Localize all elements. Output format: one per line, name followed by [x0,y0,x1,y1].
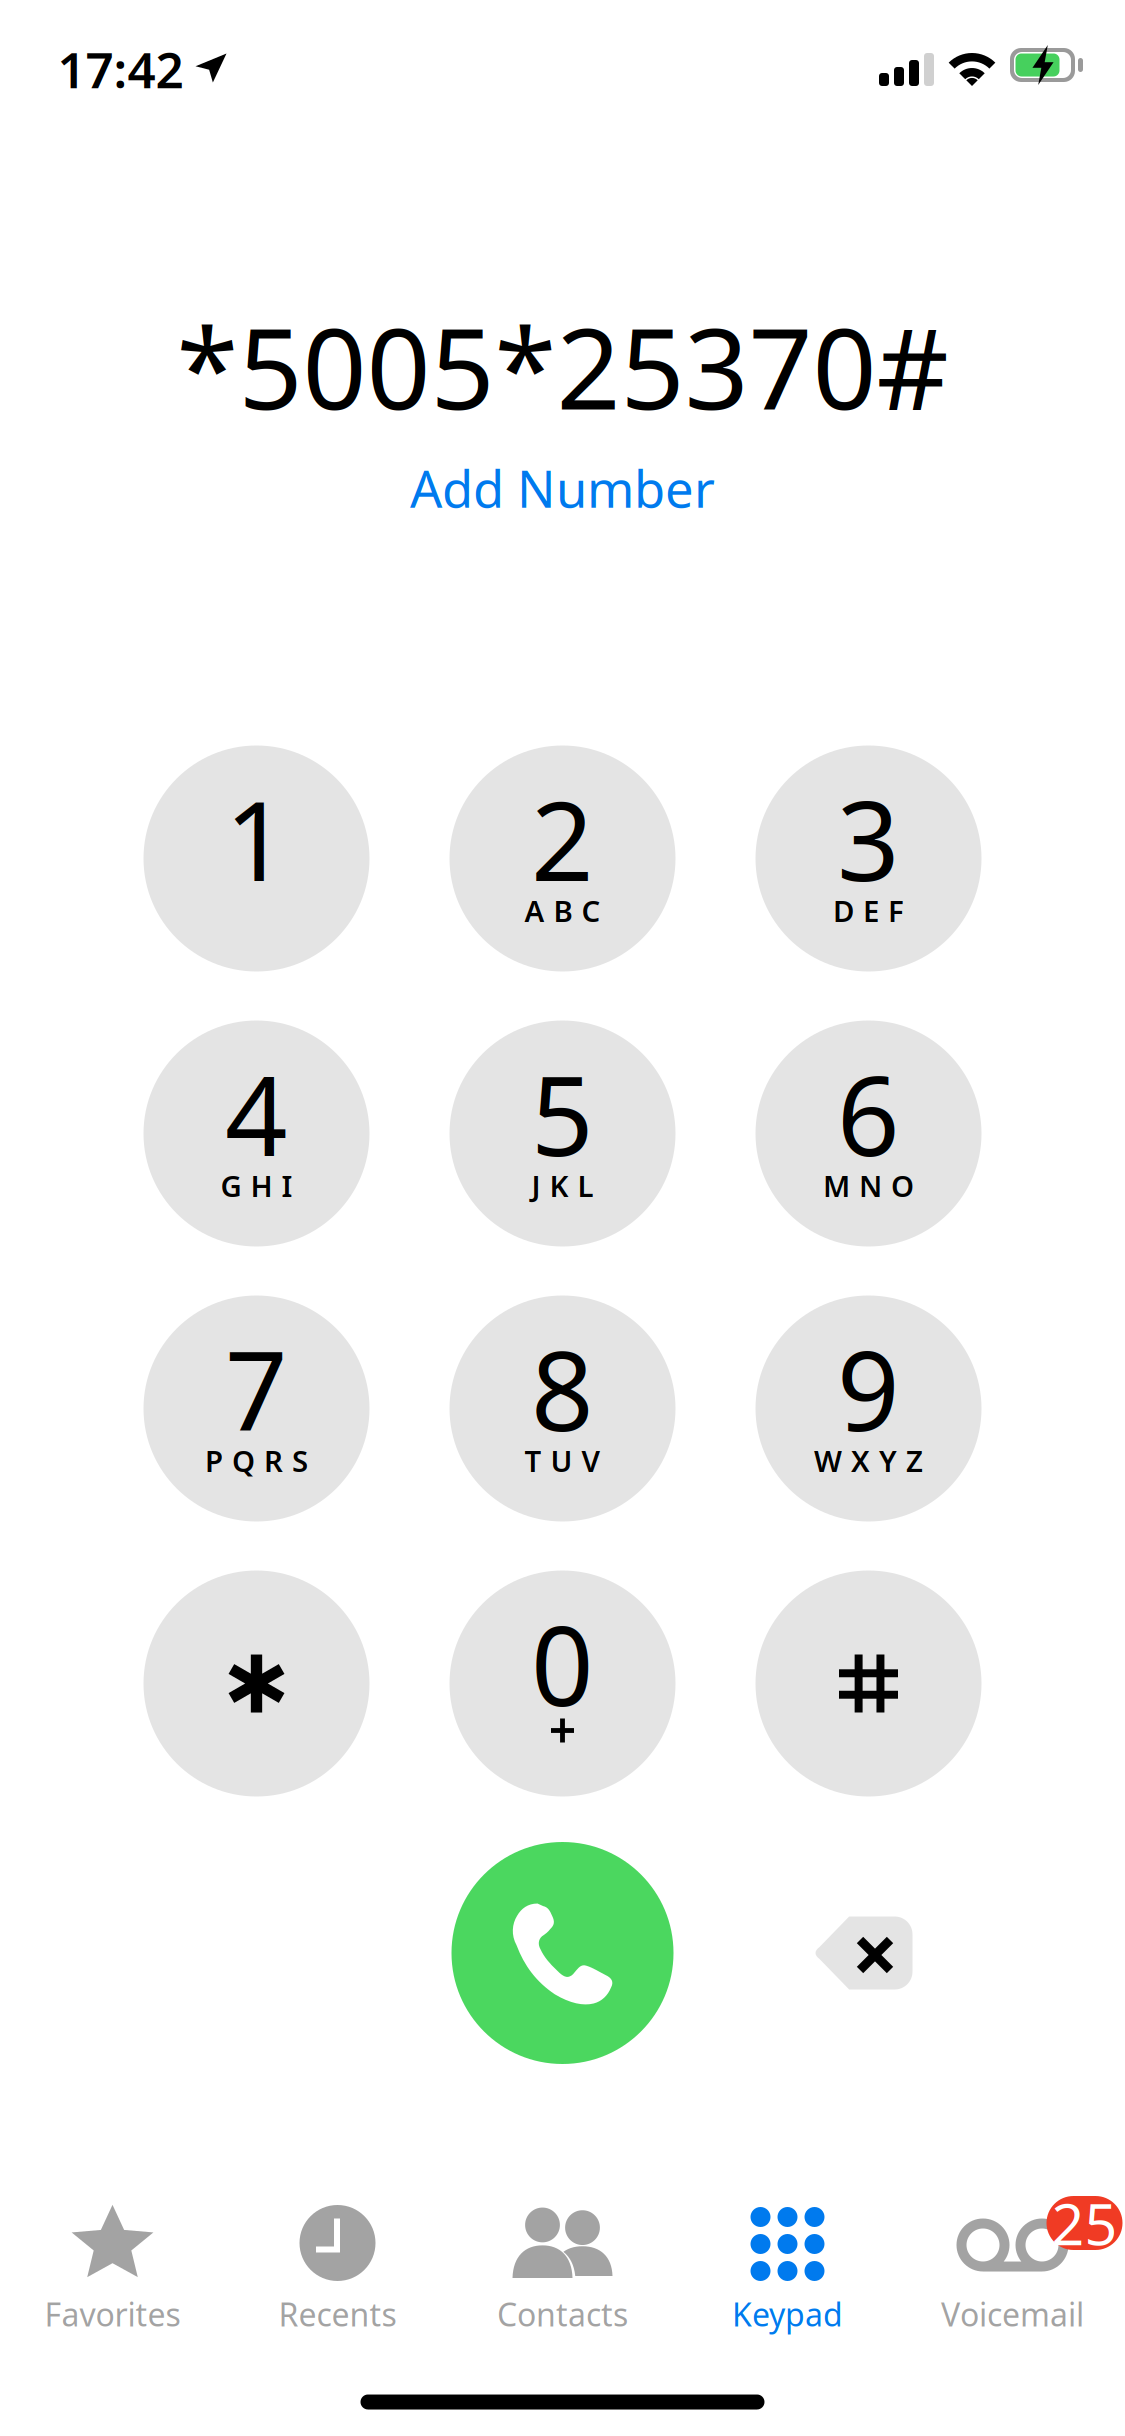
staticText: 17:42 [57,36,183,102]
button[interactable]: 25 [900,2180,1125,2336]
staticText: 5 [531,1041,594,1186]
button[interactable]: Delete [787,1888,939,2018]
button[interactable]: 1 [143,745,369,971]
button[interactable]: Favorites [0,2180,225,2336]
staticText: ABC [524,891,600,930]
button[interactable] [755,1570,981,1796]
button[interactable]: 3 [755,745,981,971]
button[interactable]: 0 [449,1570,675,1796]
button[interactable]: Call [451,1842,673,2064]
staticText: 8 [531,1316,594,1461]
button[interactable]: Keypad [675,2180,900,2336]
button[interactable]: 6 [755,1020,981,1246]
staticText: *5005*25370# [176,292,948,440]
button[interactable]: 7 [143,1295,369,1521]
button[interactable]: 8 [449,1295,675,1521]
staticText: 0 [531,1591,594,1736]
staticText: 7 [225,1316,288,1461]
staticText: WXYZ [814,1441,923,1480]
button[interactable]: 5 [449,1020,675,1246]
staticText: TUV [524,1441,600,1480]
staticText: Add Number [410,454,715,522]
button[interactable]: Contacts [450,2180,675,2336]
staticText: Favorites [44,2293,180,2335]
staticText: GHI [220,1166,292,1205]
staticText: JKL [531,1166,593,1205]
button[interactable]: 9 [755,1295,981,1521]
button[interactable]: Recents [225,2180,450,2336]
staticText: 4 [225,1041,288,1186]
button[interactable] [143,1570,369,1796]
staticText: MNO [823,1166,914,1205]
staticText: Contacts [497,2293,628,2335]
staticText: Recents [278,2293,396,2335]
staticText: Keypad [732,2293,843,2335]
button[interactable]: Add Number [352,452,772,524]
staticText: 9 [837,1316,900,1461]
staticText: DEF [833,891,904,930]
staticText: 3 [837,766,900,911]
staticText: 6 [837,1041,900,1186]
staticText: 1 [225,766,288,911]
button[interactable]: 2 [449,745,675,971]
button[interactable]: 4 [143,1020,369,1246]
staticText: Voicemail [941,2293,1084,2335]
staticText: 2 [531,766,594,911]
staticText: 25 [1051,2185,1117,2261]
staticText: PQRS [205,1441,308,1480]
